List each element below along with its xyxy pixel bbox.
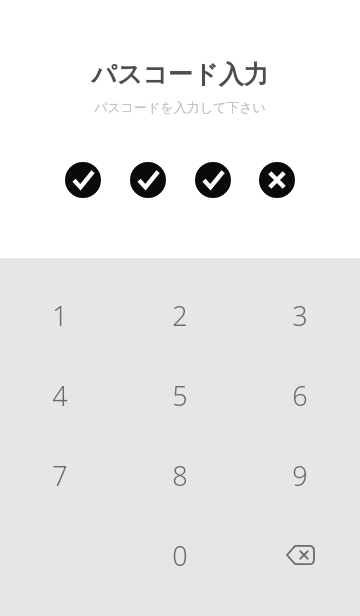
staticText: 8 [172,457,188,494]
button[interactable]: 3 [240,275,360,355]
staticText: 6 [292,377,308,414]
button[interactable]: Entered digit [195,162,231,198]
staticText: 7 [52,457,68,494]
staticText: パスコード入力 [91,59,269,90]
staticText: 0 [172,537,188,574]
button[interactable]: 4 [0,355,120,435]
button[interactable]: 7 [0,435,120,515]
button[interactable]: 8 [120,435,240,515]
button[interactable]: 5 [120,355,240,435]
button[interactable]: 2 [120,275,240,355]
staticText: 5 [172,377,188,414]
button[interactable]: Clear [259,162,295,198]
button[interactable]: 6 [240,355,360,435]
staticText: 4 [52,377,68,414]
staticText: 1 [52,297,68,334]
button[interactable]: 9 [240,435,360,515]
staticText: 3 [292,297,308,334]
button[interactable]: 1 [0,275,120,355]
button[interactable]: 0 [120,515,240,595]
button[interactable]: Entered digit [65,162,101,198]
staticText: 9 [292,457,308,494]
staticText: パスコードを入力して下さい [94,99,266,115]
staticText: 2 [172,297,188,334]
button[interactable]: Entered digit [130,162,166,198]
button[interactable]: Backspace [240,515,360,595]
